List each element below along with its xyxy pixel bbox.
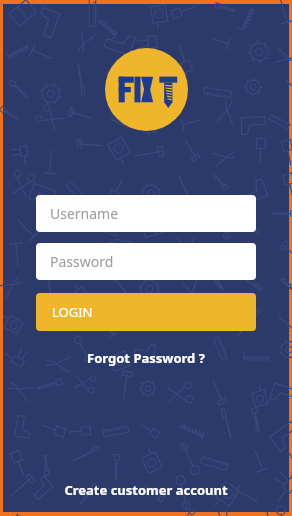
button[interactable]: Forgot Password ? (36, 345, 256, 371)
staticText: Password (50, 252, 114, 271)
button[interactable]: LOGIN (36, 293, 256, 331)
staticText: LOGIN (52, 303, 93, 321)
staticText: Create customer account (64, 481, 228, 499)
staticText: Forgot Password ? (87, 349, 205, 367)
button[interactable]: Create customer account (3, 468, 289, 512)
button[interactable]: Password (36, 243, 256, 280)
button[interactable]: Username (36, 195, 256, 232)
staticText: Username (50, 204, 119, 223)
